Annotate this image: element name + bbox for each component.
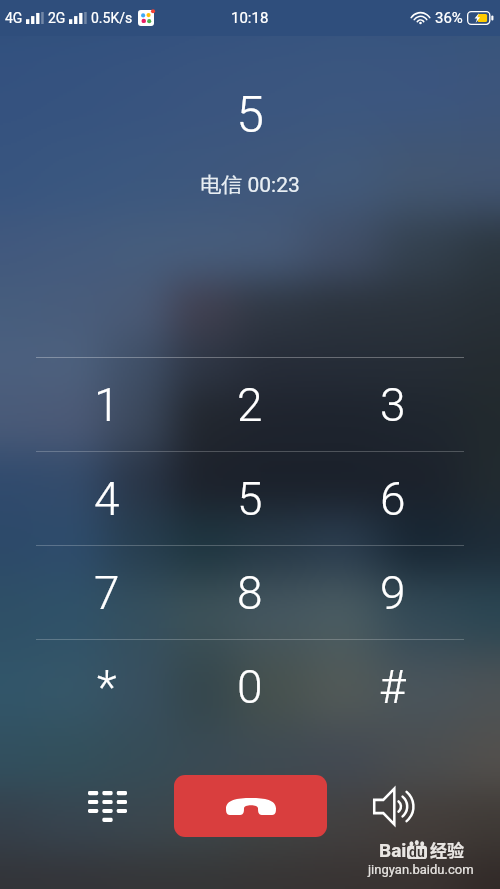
button[interactable]: 5 (178, 452, 321, 545)
button[interactable]: 0 (178, 640, 321, 733)
staticText: 2G (48, 10, 66, 26)
staticText: 5 (0, 86, 500, 145)
staticText: 1 (94, 378, 120, 432)
button[interactable]: Keypad (76, 775, 138, 837)
button[interactable]: Speaker (362, 775, 424, 837)
staticText: # (379, 660, 406, 714)
button[interactable]: # (321, 640, 464, 733)
staticText: 电信 00:23 (0, 172, 500, 198)
staticText: * (97, 660, 117, 714)
button[interactable]: 7 (36, 546, 178, 639)
button[interactable]: * (36, 640, 178, 733)
staticText: jingyan.baidu.com (368, 862, 474, 877)
staticText: du (409, 844, 425, 860)
staticText: 4G (5, 10, 23, 26)
staticText: 36% (435, 9, 463, 27)
button[interactable]: 1 (36, 358, 178, 451)
staticText: 0 (237, 660, 263, 714)
staticText: 4 (94, 472, 120, 526)
staticText: 5 (237, 472, 263, 526)
button[interactable]: 2 (178, 358, 321, 451)
button[interactable]: 4 (36, 452, 178, 545)
staticText: 经验 (430, 837, 464, 862)
staticText: Bai (379, 839, 407, 861)
staticText: 10:18 (231, 9, 269, 27)
staticText: 3 (380, 378, 406, 432)
button[interactable]: 9 (321, 546, 464, 639)
button[interactable]: 3 (321, 358, 464, 451)
staticText: 0.5K/s (91, 10, 133, 26)
staticText: 6 (380, 472, 406, 526)
button[interactable]: 6 (321, 452, 464, 545)
staticText: 2 (237, 378, 263, 432)
staticText: 9 (380, 566, 406, 620)
button[interactable]: 8 (178, 546, 321, 639)
staticText: 8 (237, 566, 263, 620)
staticText: 7 (94, 566, 120, 620)
button[interactable]: End call (174, 775, 327, 837)
